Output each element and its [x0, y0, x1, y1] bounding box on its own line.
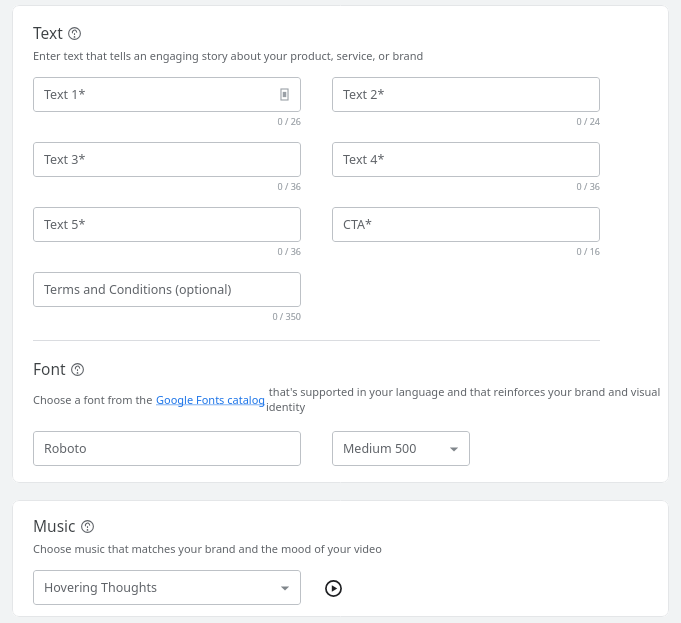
button[interactable]: Text 1* — [33, 77, 301, 112]
staticText: Choose music that matches your brand and… — [33, 541, 382, 556]
staticText: Text 3* — [44, 151, 86, 168]
staticText: Text 2* — [343, 86, 385, 103]
other: Help — [81, 520, 94, 533]
staticText: Medium 500 — [343, 440, 417, 457]
staticText: Terms and Conditions (optional) — [44, 281, 232, 298]
button[interactable]: Medium 500 — [332, 431, 470, 466]
button[interactable]: Text 3* — [33, 142, 301, 177]
staticText: 0 / 16 — [332, 245, 600, 257]
button[interactable]: Hovering Thoughts — [33, 570, 301, 605]
button[interactable]: CTA* — [332, 207, 600, 242]
button[interactable]: Google Fonts catalog — [156, 392, 266, 407]
staticText: Hovering Thoughts — [44, 579, 157, 596]
staticText: Text 1* — [44, 86, 86, 103]
button[interactable]: Terms and Conditions (optional) — [33, 272, 301, 307]
staticText: Text 5* — [44, 216, 86, 233]
staticText: Text — [33, 22, 63, 43]
staticText: CTA* — [343, 216, 372, 233]
staticText: 0 / 36 — [332, 180, 600, 192]
staticText: 0 / 36 — [33, 245, 301, 257]
other: Help — [71, 363, 84, 376]
staticText: 0 / 36 — [33, 180, 301, 192]
staticText: Choose a font from the — [33, 392, 156, 407]
staticText: Font — [33, 358, 66, 379]
staticText: Enter text that tells an engaging story … — [33, 48, 424, 63]
staticText: Roboto — [44, 440, 87, 457]
staticText: that's supported in your language and th… — [266, 384, 669, 414]
staticText: 0 / 350 — [33, 310, 301, 322]
other: Help — [68, 27, 81, 40]
staticText: 0 / 26 — [33, 115, 301, 127]
button[interactable]: Text 5* — [33, 207, 301, 242]
button[interactable]: Roboto — [33, 431, 301, 466]
staticText: 0 / 24 — [332, 115, 600, 127]
staticText: Text 4* — [343, 151, 385, 168]
button[interactable]: Text 2* — [332, 77, 600, 112]
staticText: Music — [33, 515, 76, 536]
staticText: Recommended: Roboto Medium, PT Serif, Qu… — [33, 480, 318, 483]
button[interactable]: Text 4* — [332, 142, 600, 177]
button[interactable]: Play — [321, 576, 345, 600]
